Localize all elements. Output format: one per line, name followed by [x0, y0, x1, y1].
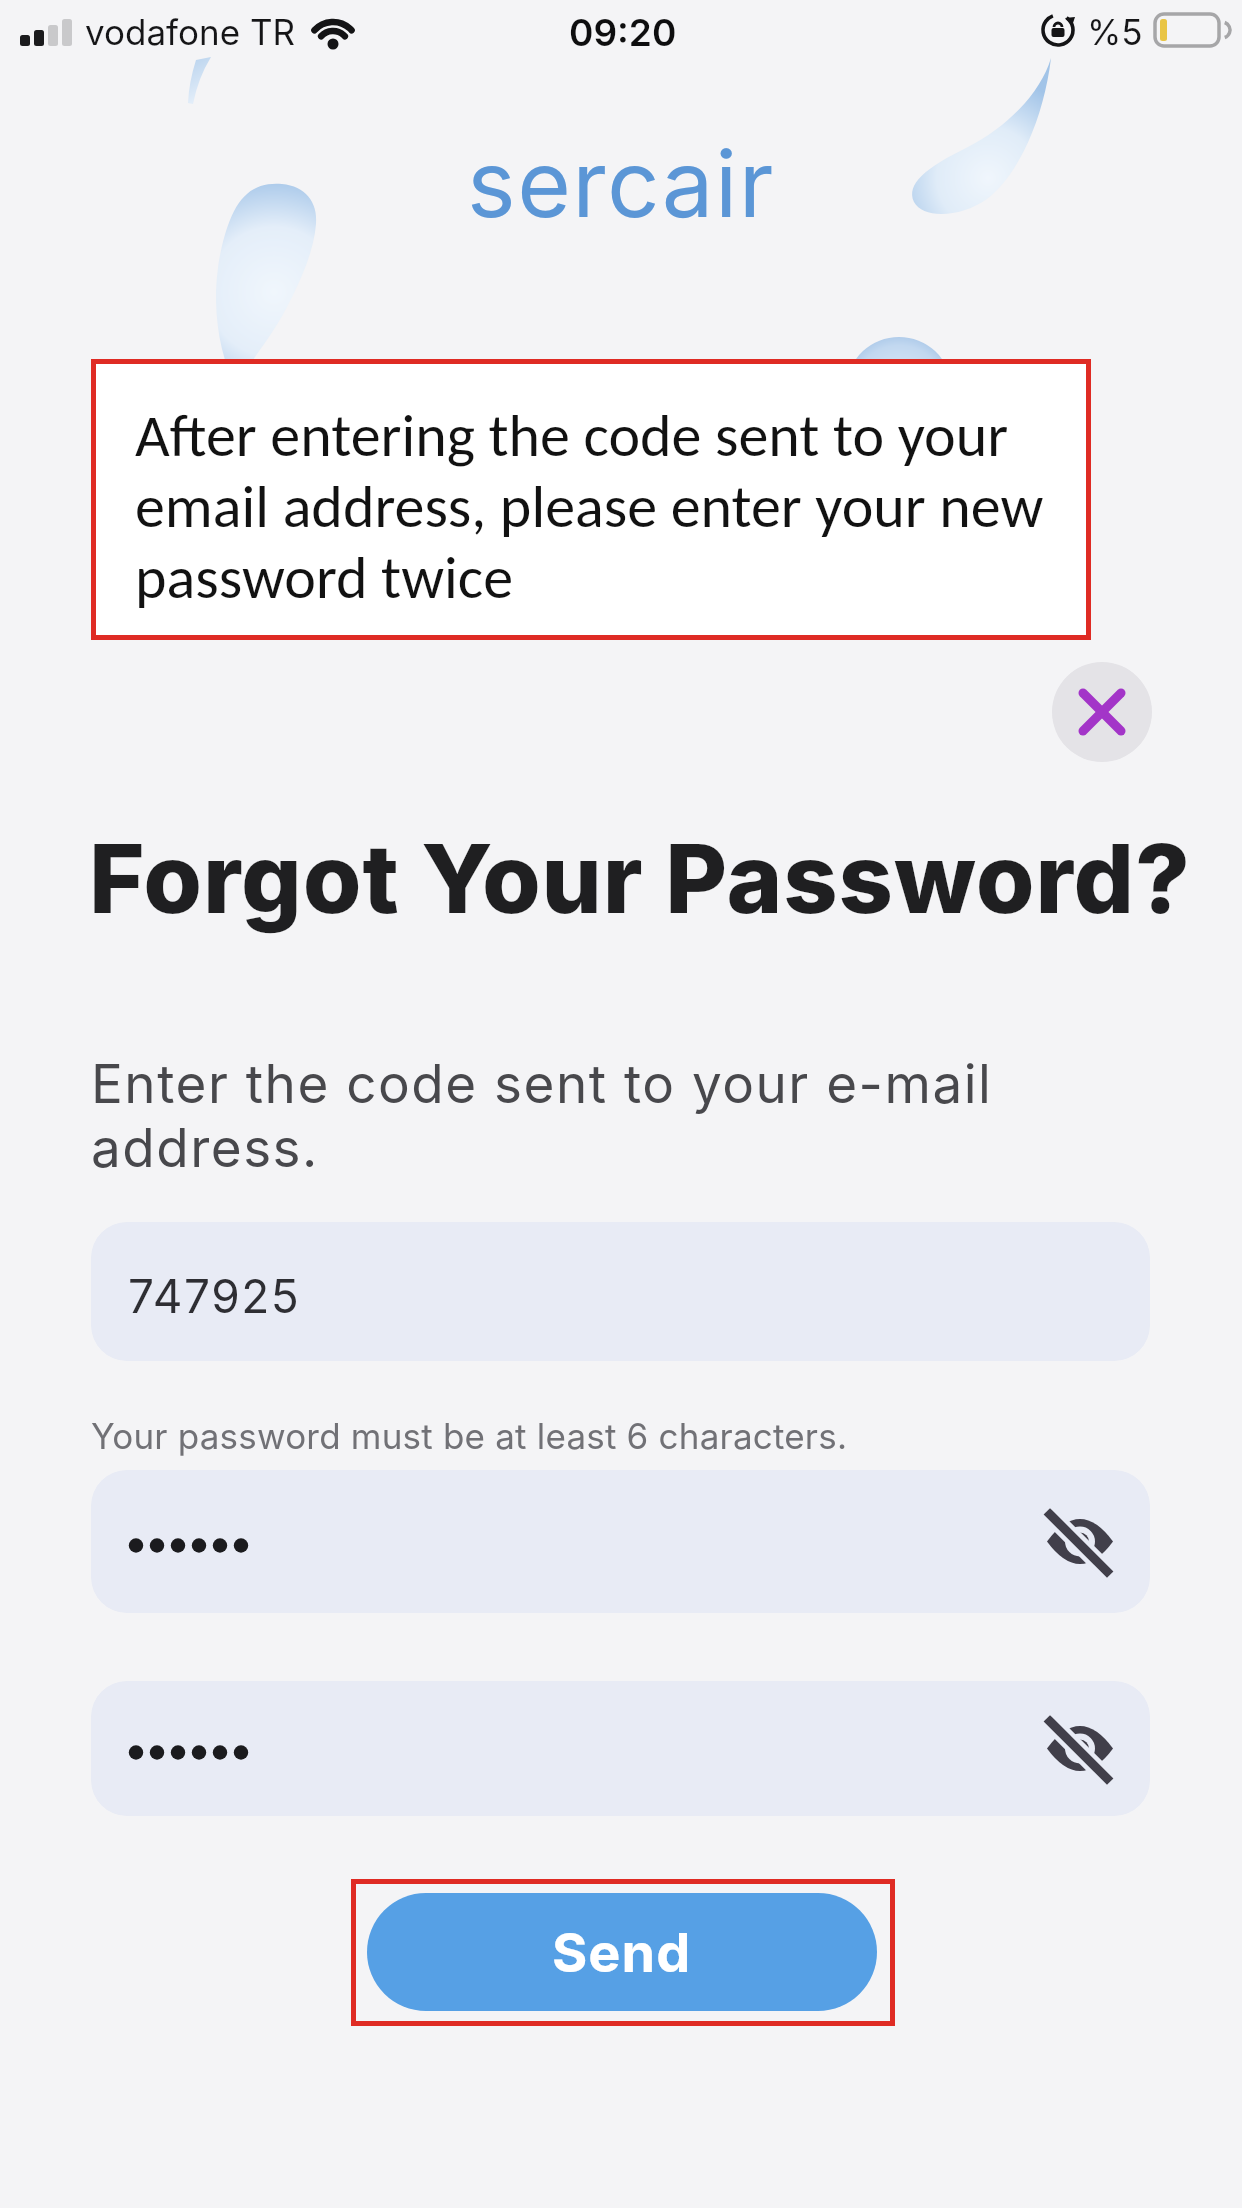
staticText: Enter the code sent to your e-mail addre…	[91, 1052, 993, 1180]
staticText: sercair	[0, 128, 1242, 239]
button[interactable]: After entering the code sent to your ema…	[91, 359, 1091, 640]
button[interactable]	[91, 1681, 1150, 1816]
staticText: %5	[1087, 11, 1143, 53]
staticText: 747925	[128, 1268, 301, 1324]
button[interactable]: 747925	[91, 1222, 1150, 1361]
button[interactable]: Send	[367, 1893, 877, 2011]
staticText: After entering the code sent to your ema…	[135, 399, 1044, 614]
staticText: Your password must be at least 6 charact…	[91, 1415, 848, 1457]
staticText: Send	[552, 1920, 692, 1985]
button[interactable]	[91, 1470, 1150, 1613]
button[interactable]	[1052, 662, 1152, 762]
staticText: 09:20	[569, 10, 677, 55]
staticText: vodafone TR	[85, 11, 296, 53]
staticText: Forgot Your Password?	[89, 821, 1191, 936]
